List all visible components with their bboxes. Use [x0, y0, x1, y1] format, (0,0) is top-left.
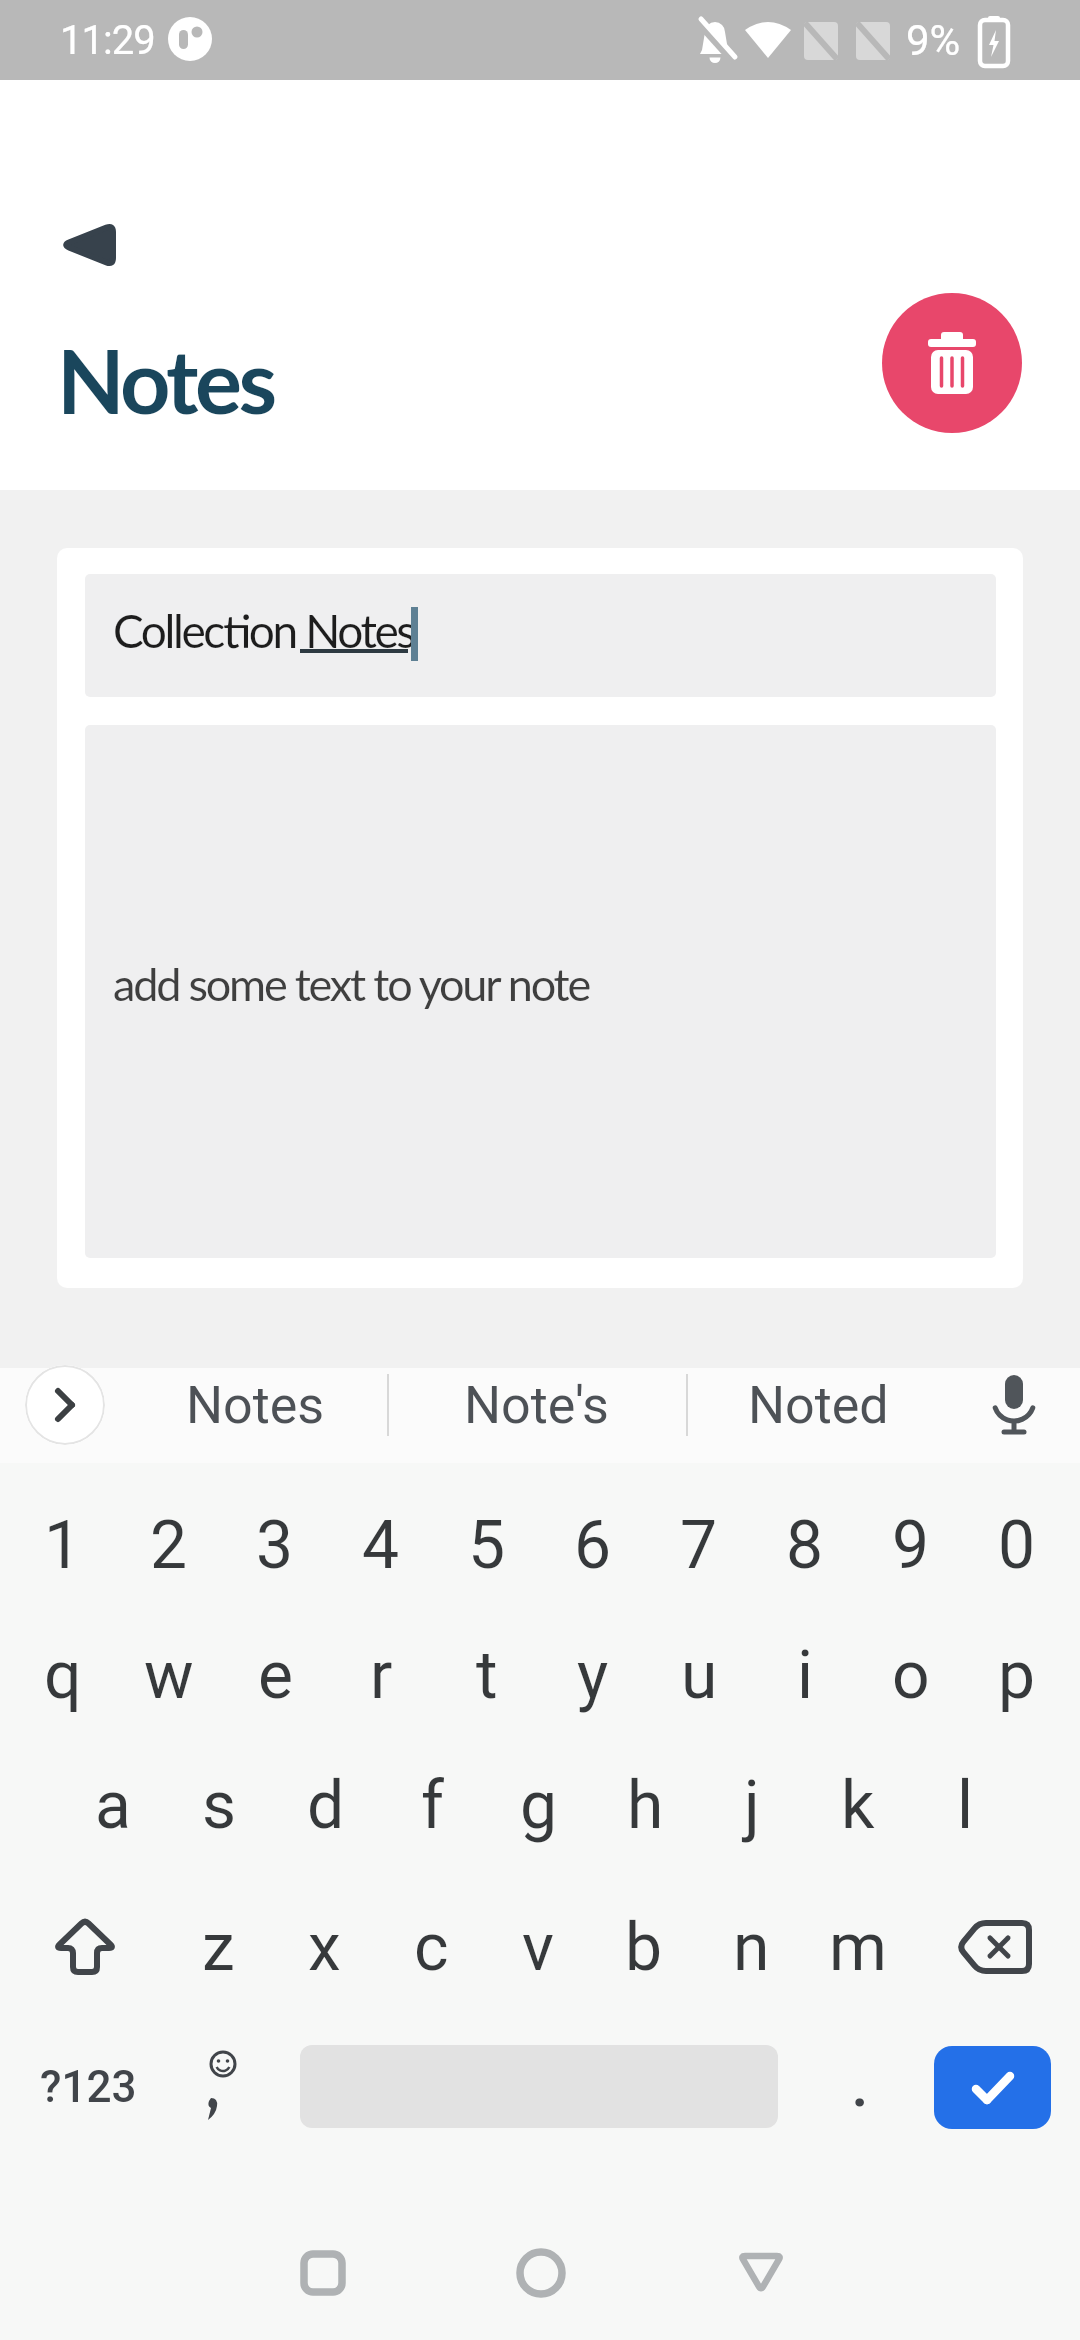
staticText: 7	[680, 1507, 718, 1584]
button[interactable]: p	[964, 1615, 1070, 1735]
staticText: n	[733, 1909, 770, 1986]
staticText: Notes	[57, 327, 274, 433]
staticText: e	[258, 1637, 293, 1714]
staticText: q	[44, 1637, 82, 1714]
button[interactable]: .	[820, 2035, 900, 2139]
button[interactable]: Notes	[155, 1371, 355, 1439]
staticText: 2	[150, 1507, 188, 1584]
staticText: 11:29	[60, 17, 155, 64]
button[interactable]: y	[540, 1615, 646, 1735]
staticText: r	[370, 1637, 393, 1714]
button[interactable]: 6	[540, 1485, 646, 1605]
button[interactable]: a	[60, 1745, 166, 1865]
button[interactable]	[40, 205, 135, 285]
button[interactable]	[978, 1369, 1050, 1441]
button[interactable]: v	[485, 1887, 591, 2007]
staticText: b	[625, 1909, 663, 1986]
button[interactable]: j	[699, 1745, 805, 1865]
staticText: p	[998, 1637, 1036, 1714]
staticText: d	[307, 1767, 345, 1844]
staticText: ?123	[40, 2061, 137, 2113]
button[interactable]	[85, 574, 996, 697]
staticText: k	[841, 1767, 875, 1844]
staticText: y	[577, 1637, 609, 1714]
staticText: m	[829, 1909, 887, 1986]
staticText: t	[476, 1637, 498, 1714]
button[interactable]: b	[591, 1887, 697, 2007]
button[interactable]: s	[166, 1745, 272, 1865]
staticText: Note's	[464, 1375, 609, 1436]
staticText: 3	[256, 1507, 294, 1584]
button[interactable]: ?123	[30, 2035, 146, 2139]
button[interactable]: r	[328, 1615, 434, 1735]
button[interactable]	[270, 2240, 375, 2306]
button[interactable]: l	[912, 1745, 1018, 1865]
staticText: f	[421, 1767, 444, 1844]
button[interactable]: o	[858, 1615, 964, 1735]
button[interactable]: m	[805, 1887, 911, 2007]
button[interactable]	[708, 2240, 813, 2306]
button[interactable]: z	[165, 1887, 271, 2007]
button[interactable]: 5	[434, 1485, 540, 1605]
staticText: s	[202, 1767, 237, 1844]
staticText: z	[202, 1909, 235, 1986]
staticText: g	[520, 1767, 558, 1844]
staticText: j	[744, 1767, 760, 1844]
staticText: i	[797, 1637, 814, 1714]
staticText: o	[892, 1637, 930, 1714]
staticText: Notes	[186, 1375, 325, 1436]
staticText: 4	[362, 1507, 400, 1584]
staticText: 1	[44, 1507, 82, 1584]
button[interactable]: t	[434, 1615, 540, 1735]
button[interactable]	[85, 725, 996, 1258]
button[interactable]: 2	[116, 1485, 222, 1605]
button[interactable]: i	[752, 1615, 858, 1735]
staticText: v	[522, 1909, 554, 1986]
button[interactable]: h	[592, 1745, 698, 1865]
button[interactable]: x	[271, 1887, 377, 2007]
button[interactable]	[180, 2035, 260, 2139]
button[interactable]	[938, 1890, 1050, 2004]
staticText: 9	[892, 1507, 930, 1584]
button[interactable]: w	[116, 1615, 222, 1735]
button[interactable]	[882, 293, 1022, 433]
button[interactable]: Noted	[718, 1371, 918, 1439]
button[interactable]: e	[222, 1615, 328, 1735]
staticText: c	[414, 1909, 449, 1986]
staticText: x	[308, 1909, 341, 1986]
staticText: 5	[468, 1507, 506, 1584]
staticText: 8	[786, 1507, 824, 1584]
staticText: 9%	[906, 16, 961, 65]
button[interactable]: k	[805, 1745, 911, 1865]
button[interactable]: 3	[222, 1485, 328, 1605]
staticText: 6	[574, 1507, 612, 1584]
button[interactable]: c	[378, 1887, 484, 2007]
staticText: a	[95, 1767, 131, 1844]
button[interactable]: 7	[646, 1485, 752, 1605]
button[interactable]: u	[646, 1615, 752, 1735]
button[interactable]: g	[486, 1745, 592, 1865]
button[interactable]: 8	[752, 1485, 858, 1605]
staticText: h	[627, 1767, 664, 1844]
button[interactable]: Note's	[436, 1371, 636, 1439]
button[interactable]: 4	[328, 1485, 434, 1605]
staticText: add some text to your note	[113, 957, 589, 1011]
staticText: w	[144, 1637, 194, 1714]
staticText: l	[957, 1767, 974, 1844]
button[interactable]: 0	[964, 1485, 1070, 1605]
button[interactable]: 9	[858, 1485, 964, 1605]
button[interactable]: n	[698, 1887, 804, 2007]
button[interactable]	[30, 1890, 140, 2004]
button[interactable]	[25, 1365, 105, 1445]
button[interactable]	[488, 2240, 593, 2306]
button[interactable]: 1	[10, 1485, 116, 1605]
button[interactable]	[934, 2046, 1051, 2129]
button[interactable]: f	[379, 1745, 485, 1865]
staticText: Collection Notes	[113, 603, 414, 658]
button[interactable]: d	[273, 1745, 379, 1865]
staticText: Noted	[748, 1375, 889, 1436]
staticText: .	[852, 2056, 868, 2119]
button[interactable]: q	[10, 1615, 116, 1735]
staticText: 0	[998, 1507, 1036, 1584]
